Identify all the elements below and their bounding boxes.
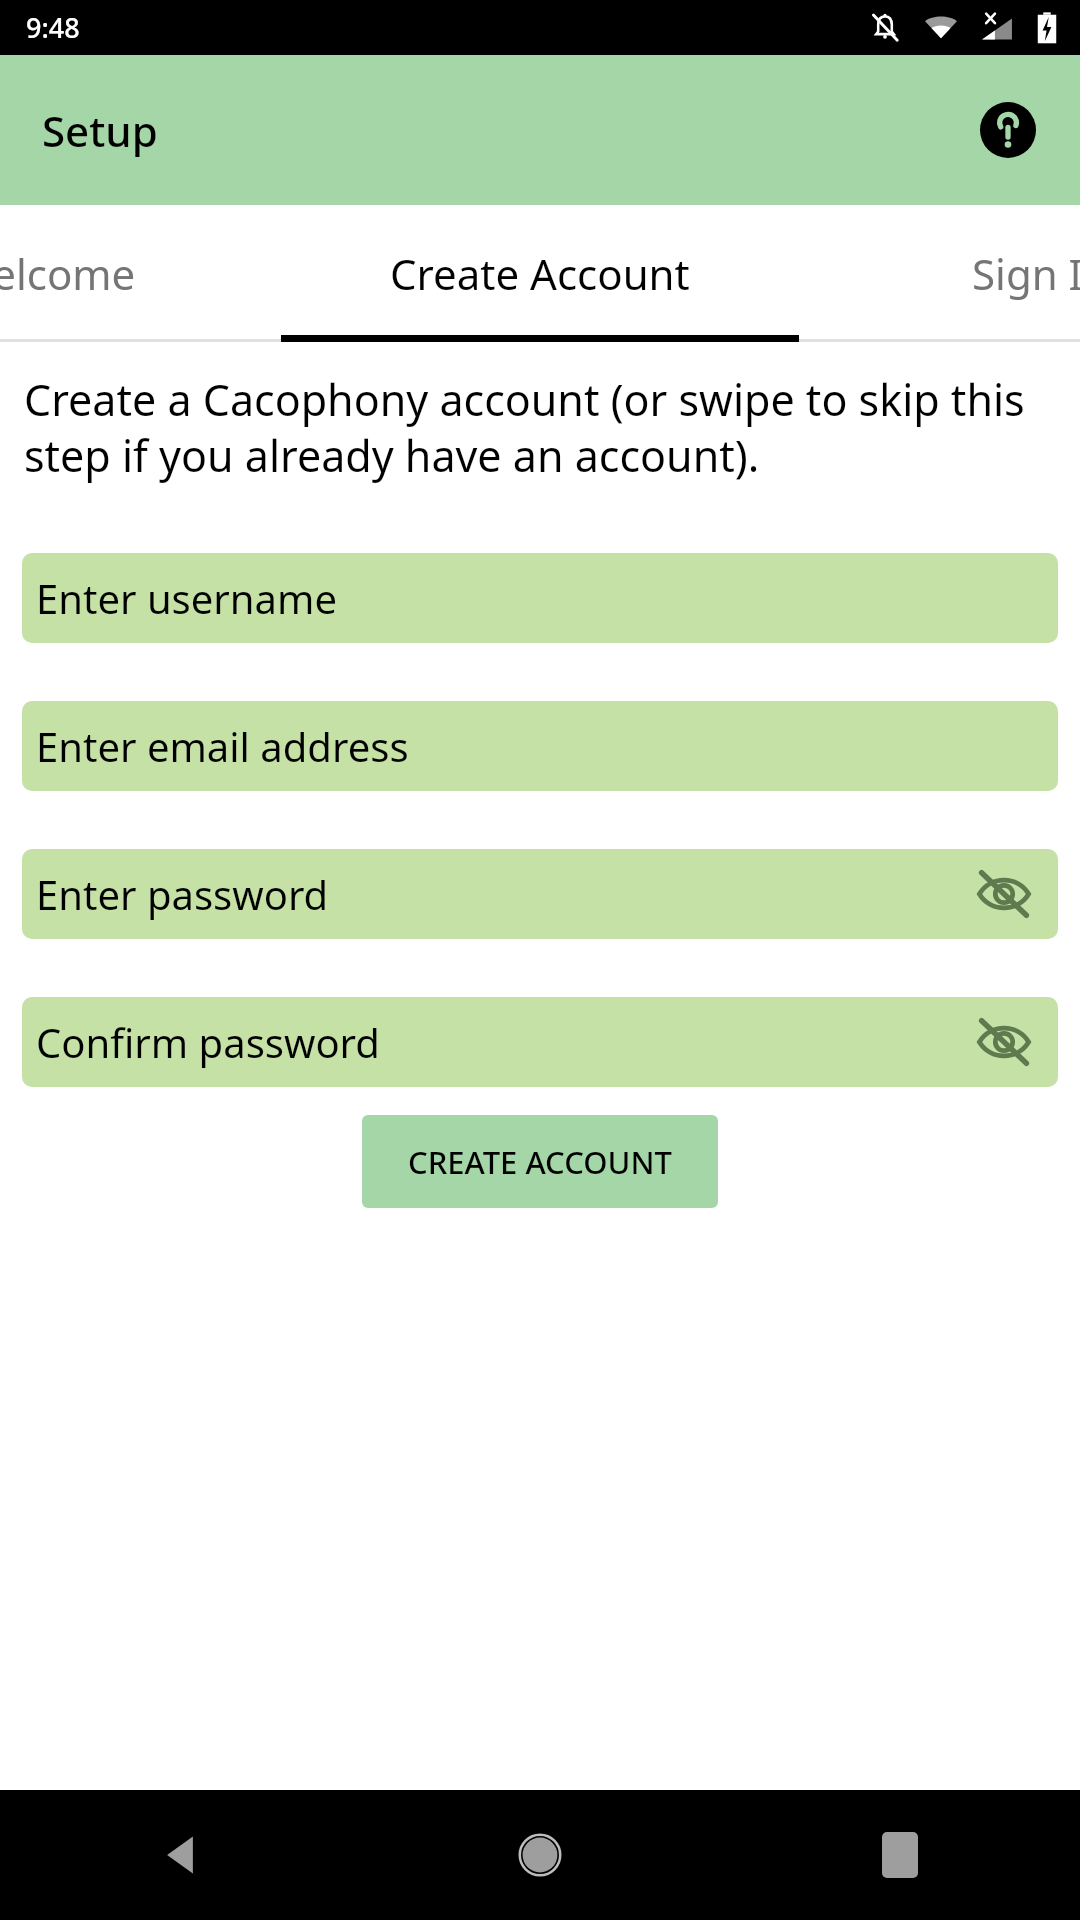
button[interactable]: CREATE ACCOUNT bbox=[362, 1115, 718, 1208]
staticText: 9:48 bbox=[26, 9, 80, 46]
staticText: Enter password bbox=[36, 867, 329, 921]
button[interactable]: Welcome bbox=[0, 205, 185, 342]
staticText: Enter username bbox=[36, 571, 337, 625]
staticText: Welcome bbox=[0, 245, 136, 302]
button[interactable]: Sign In bbox=[890, 205, 1080, 342]
button[interactable]: Create Account bbox=[280, 205, 800, 342]
staticText: Setup bbox=[42, 102, 158, 159]
staticText: CREATE ACCOUNT bbox=[408, 1141, 672, 1183]
staticText: Enter email address bbox=[36, 719, 409, 773]
button[interactable]: Show password bbox=[972, 1010, 1036, 1074]
staticText: Create Account bbox=[390, 245, 690, 302]
button[interactable]: Help bbox=[966, 88, 1050, 172]
button[interactable]: Recent apps bbox=[720, 1790, 1080, 1920]
button[interactable]: Back bbox=[0, 1790, 360, 1920]
button[interactable]: Enter password bbox=[22, 849, 1058, 939]
staticText: Sign In bbox=[972, 245, 1080, 302]
button[interactable]: Enter username bbox=[22, 553, 1058, 643]
button[interactable]: Show password bbox=[972, 862, 1036, 926]
button[interactable]: Confirm password bbox=[22, 997, 1058, 1087]
staticText: Confirm password bbox=[36, 1015, 380, 1069]
staticText: Create a Cacophony account (or swipe to … bbox=[24, 370, 1056, 485]
button[interactable]: Enter email address bbox=[22, 701, 1058, 791]
button[interactable]: Home bbox=[360, 1790, 720, 1920]
